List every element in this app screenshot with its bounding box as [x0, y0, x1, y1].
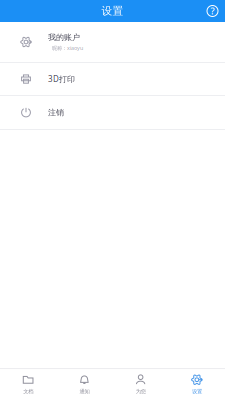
button[interactable]: 3D打印	[0, 63, 225, 96]
staticText: 我的账户	[48, 32, 80, 42]
staticText: 设置	[101, 4, 123, 17]
staticText: 通知	[79, 388, 89, 395]
staticText: ?	[210, 5, 214, 17]
staticText: 设置	[192, 388, 202, 395]
button[interactable]: 我的账户	[0, 22, 225, 63]
button[interactable]: Help	[207, 1, 225, 20]
button[interactable]: 设置	[169, 369, 225, 400]
button[interactable]: 注销	[0, 96, 225, 130]
staticText: 3D打印	[48, 74, 75, 84]
button[interactable]: 为您	[112, 369, 169, 400]
button[interactable]: 文档	[0, 369, 56, 400]
staticText: 注销	[48, 108, 64, 117]
button[interactable]: 通知	[56, 369, 112, 400]
staticText: 昵称：xiaoyu	[52, 44, 83, 51]
staticText: 文档	[23, 388, 33, 395]
staticText: 为您	[136, 388, 146, 395]
